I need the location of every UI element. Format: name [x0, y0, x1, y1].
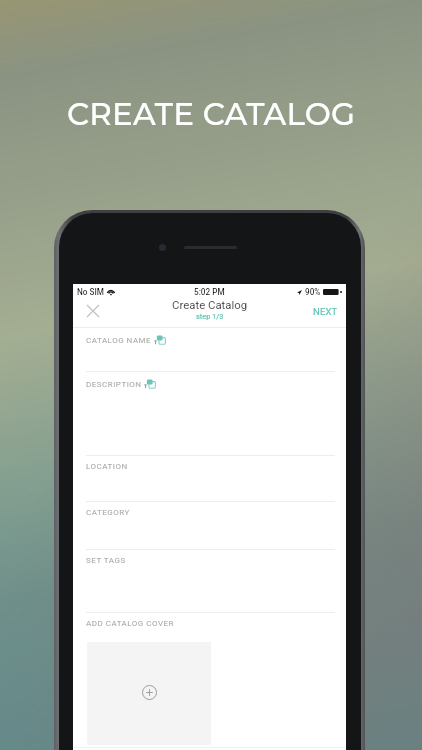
button[interactable]: DESCRIPTION — [73, 371, 346, 456]
staticText: CREATE CATALOG — [0, 95, 422, 133]
staticText: No SIM — [77, 287, 104, 297]
staticText: Create Catalog — [172, 298, 248, 311]
staticText: CATALOG NAME — [86, 336, 152, 345]
button[interactable]: CATEGORY — [73, 501, 346, 549]
staticText: LOCATION — [86, 462, 128, 471]
staticText: NEXT — [313, 306, 338, 317]
button[interactable]: ADD CATALOG COVER — [86, 619, 174, 628]
staticText: DESCRIPTION — [86, 380, 142, 389]
button[interactable]: CATALOG NAME — [73, 327, 346, 371]
staticText: SET TAGS — [86, 556, 126, 565]
button[interactable]: Add catalog cover photo — [87, 642, 211, 745]
staticText: step 1/3 — [196, 312, 224, 321]
button[interactable]: NEXT — [305, 300, 346, 323]
button[interactable]: Close — [82, 300, 104, 322]
staticText: ADD CATALOG COVER — [86, 619, 174, 628]
staticText: 90% — [305, 287, 321, 297]
button[interactable]: SET TAGS — [73, 549, 346, 613]
button[interactable]: LOCATION — [73, 455, 346, 501]
staticText: CATEGORY — [86, 508, 130, 517]
staticText: 5:02 PM — [194, 287, 225, 297]
